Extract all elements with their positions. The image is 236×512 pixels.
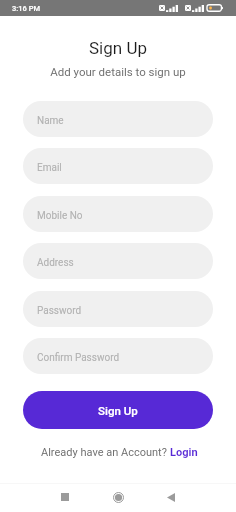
button[interactable]: Already have an Account? xyxy=(41,444,198,461)
staticText: Sign Up xyxy=(98,404,138,417)
button[interactable]: Home xyxy=(106,485,130,509)
staticText: Confirm Password xyxy=(37,352,120,364)
staticText: 3:16 PM xyxy=(12,4,41,13)
button[interactable]: Recent apps xyxy=(53,485,77,509)
button[interactable]: Sign Up xyxy=(23,391,213,429)
staticText: Add your details to sign up xyxy=(0,65,236,78)
button[interactable]: Confirm Password xyxy=(23,338,213,374)
staticText: Login xyxy=(170,446,198,459)
staticText: Email xyxy=(37,162,62,174)
staticText: Sign Up xyxy=(0,38,236,58)
staticText: Name xyxy=(37,115,64,127)
button[interactable]: Password xyxy=(23,291,213,327)
button[interactable]: Address xyxy=(23,243,213,279)
staticText: Address xyxy=(37,257,74,269)
staticText: Mobile No xyxy=(37,210,83,222)
button[interactable]: Name xyxy=(23,101,213,137)
staticText: Password xyxy=(37,305,82,317)
button[interactable]: Back xyxy=(159,485,183,509)
button[interactable]: Mobile No xyxy=(23,196,213,232)
button[interactable]: Email xyxy=(23,148,213,184)
staticText: Already have an Account? xyxy=(41,446,170,459)
